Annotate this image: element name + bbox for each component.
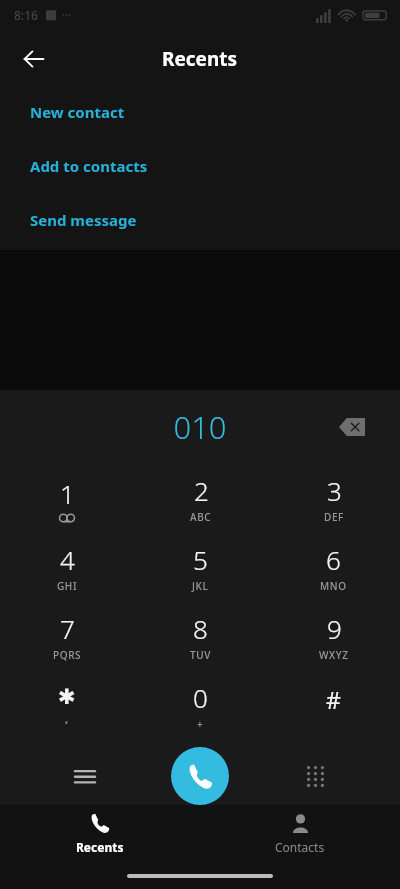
staticText: 7 <box>60 611 75 646</box>
button[interactable]: Recents <box>0 805 200 863</box>
staticText: ABC <box>190 510 212 524</box>
button[interactable]: 6 <box>267 533 400 602</box>
button[interactable]: New contact <box>0 88 400 122</box>
staticText: TUV <box>190 648 211 662</box>
staticText: PQRS <box>53 648 82 662</box>
staticText: DEF <box>324 510 344 524</box>
button[interactable]: 8 <box>134 602 267 671</box>
staticText: 6 <box>326 542 341 577</box>
staticText: Recents <box>162 46 238 72</box>
staticText: 8 <box>193 611 208 646</box>
button[interactable]: 3 <box>267 464 400 533</box>
staticText: GHI <box>57 579 78 593</box>
button[interactable]: 1 <box>0 464 134 533</box>
staticText: MNO <box>320 579 347 593</box>
staticText: 5 <box>193 542 208 577</box>
button[interactable]: 7 <box>0 602 134 671</box>
button[interactable]: Menu <box>62 753 108 799</box>
staticText: + <box>197 717 204 731</box>
staticText: 3 <box>327 473 342 508</box>
button[interactable]: Contacts <box>200 805 400 863</box>
button[interactable]: 9 <box>267 602 400 671</box>
staticText: # <box>326 684 341 715</box>
button[interactable]: Send message <box>0 176 400 230</box>
button[interactable]: 2 <box>134 464 267 533</box>
staticText: Recents <box>76 839 124 855</box>
staticText: Add to contacts <box>30 156 148 176</box>
staticText: 0 <box>193 680 208 715</box>
staticText: 010 <box>173 406 227 448</box>
button[interactable]: Backspace <box>330 405 374 449</box>
staticText: Send message <box>30 210 137 230</box>
staticText: ✱ <box>58 685 76 709</box>
staticText: 2 <box>194 473 209 508</box>
staticText: 1 <box>60 476 75 511</box>
button[interactable]: Add to contacts <box>0 122 400 176</box>
button[interactable]: Back <box>10 35 58 83</box>
staticText: 9 <box>327 611 342 646</box>
button[interactable]: 5 <box>134 533 267 602</box>
staticText: New contact <box>30 102 125 122</box>
button[interactable]: ✱ <box>0 671 134 740</box>
staticText: WXYZ <box>319 648 349 662</box>
staticText: JKL <box>192 579 209 593</box>
button[interactable]: 4 <box>0 533 134 602</box>
staticText: Contacts <box>275 839 325 855</box>
staticText: 8:16 <box>14 7 38 23</box>
button[interactable]: 0 <box>134 671 267 740</box>
staticText: , <box>65 711 69 726</box>
staticText: 4 <box>60 542 75 577</box>
button[interactable]: # <box>267 671 400 740</box>
button[interactable]: Keypad <box>292 753 338 799</box>
button[interactable]: Call <box>171 747 229 805</box>
